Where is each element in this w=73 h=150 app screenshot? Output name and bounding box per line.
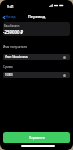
staticText: Сумма [3, 65, 13, 69]
staticText: 10000 [5, 73, 13, 77]
button[interactable]: Clear [63, 74, 66, 77]
button[interactable]: Перевести [3, 132, 70, 143]
staticText: -259000 ₽ [3, 29, 24, 35]
staticText: Перевод [0, 14, 73, 19]
button[interactable]: Иван Михайлович [3, 54, 70, 60]
button[interactable]: 10000 [3, 72, 70, 78]
staticText: Перевести [29, 136, 45, 140]
staticText: Имя получателя [3, 45, 27, 49]
staticText: 9:41 [7, 4, 14, 9]
staticText: Ваш баланс: [4, 24, 20, 28]
staticText: Иван Михайлович [5, 55, 29, 59]
button[interactable]: Back [2, 14, 17, 20]
staticText: Назад [6, 15, 16, 19]
button[interactable]: Ваш баланс: [3, 22, 70, 36]
button[interactable]: Clear [63, 56, 66, 59]
